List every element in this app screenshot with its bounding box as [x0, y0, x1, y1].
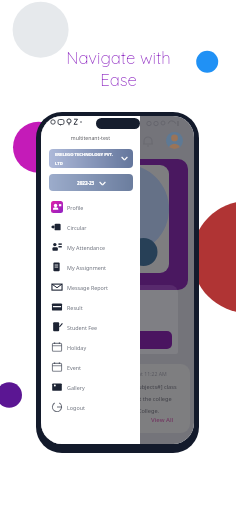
staticText: Holiday	[67, 344, 87, 351]
staticText: My Attendance	[67, 244, 106, 251]
button[interactable]: Event	[41, 357, 140, 377]
button[interactable]: Gallery	[41, 377, 140, 397]
button[interactable]: My Assignment	[41, 257, 140, 277]
staticText: View All	[151, 416, 174, 424]
button[interactable]: ERELEGO TECHNOLOGY PVT. LTD	[49, 149, 133, 168]
button[interactable]: My Attendance	[41, 237, 140, 257]
staticText: Logout	[67, 404, 85, 411]
button[interactable]: Student Fee	[41, 317, 140, 337]
button[interactable]: Profile	[166, 132, 183, 149]
staticText: Dear students of [Subjects#] class	[88, 383, 177, 391]
button[interactable]: Message Report	[41, 277, 140, 297]
button[interactable]: Holiday	[41, 337, 140, 357]
staticText: Result	[67, 304, 83, 311]
button[interactable]: Circular	[41, 217, 140, 237]
button[interactable]: Posted Wed, 19 Mar at 11:22 AM	[47, 364, 190, 433]
staticText: My Assignment	[67, 264, 107, 271]
staticText: Navigate with Ease	[66, 47, 171, 90]
staticText: 2022-23	[77, 180, 95, 186]
staticText: Profile	[67, 204, 84, 211]
staticText: Message Report	[67, 284, 109, 291]
button[interactable]: Profile	[41, 197, 140, 217]
staticText: will remain closed. College.	[88, 407, 160, 415]
button[interactable]: 2022-23	[49, 174, 133, 191]
staticText: Gallery	[67, 384, 85, 391]
staticText: this is to inform that the college	[88, 395, 172, 403]
staticText: ERELEGO TECHNOLOGY PVT. LTD	[55, 152, 113, 166]
staticText: Event	[67, 364, 82, 371]
staticText: Student Fee	[67, 324, 98, 331]
staticText: multitenant-test	[41, 134, 140, 141]
button[interactable]: Result	[41, 297, 140, 317]
staticText: Circular	[67, 224, 87, 231]
button[interactable]: Logout	[41, 397, 140, 417]
staticText: Posted Wed, 19 Mar at 11:22 AM	[88, 370, 167, 377]
